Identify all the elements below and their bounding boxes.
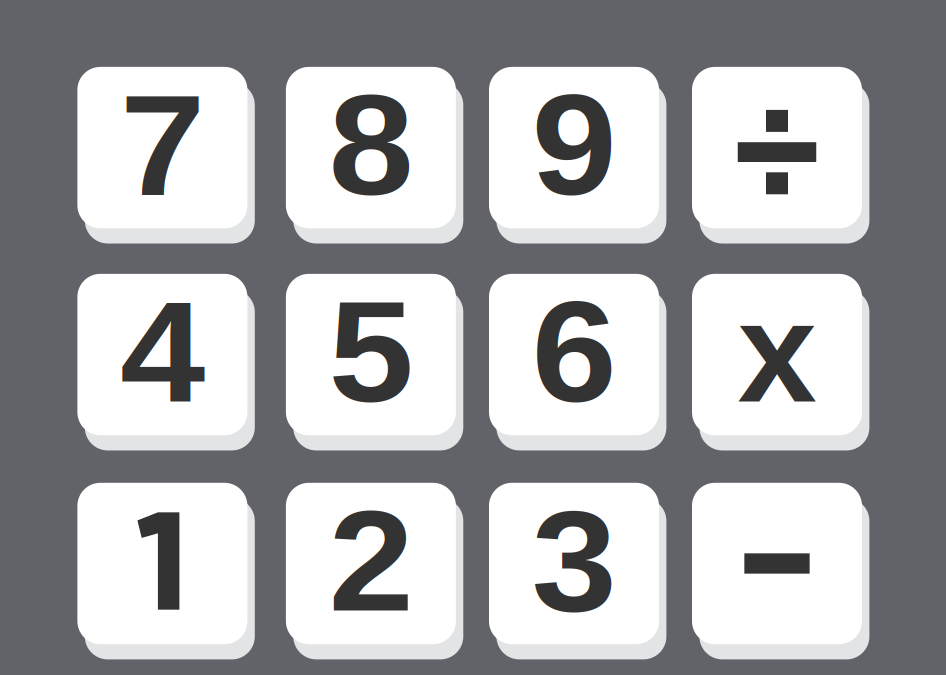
button[interactable]: 1 <box>77 483 255 659</box>
staticText: 4 <box>123 272 202 432</box>
staticText: 8 <box>331 65 410 225</box>
staticText: 2 <box>331 481 410 641</box>
button[interactable]: 6 <box>489 274 666 450</box>
button[interactable]: 8 <box>286 67 463 243</box>
staticText: 9 <box>534 65 613 225</box>
button[interactable]: 5 <box>286 274 463 450</box>
button[interactable]: 9 <box>489 67 666 243</box>
button[interactable]: Minus <box>692 483 869 659</box>
staticText: 5 <box>331 272 410 432</box>
button[interactable]: Divide <box>692 67 869 243</box>
button[interactable]: 2 <box>286 483 463 659</box>
staticText: x <box>737 272 816 432</box>
button[interactable]: 7 <box>77 67 255 243</box>
staticText: 7 <box>123 65 202 225</box>
staticText: 6 <box>534 272 613 432</box>
button[interactable]: 4 <box>77 274 255 450</box>
button[interactable]: Multiply <box>692 274 869 450</box>
button[interactable]: 3 <box>489 483 666 659</box>
staticText: 3 <box>534 481 613 641</box>
